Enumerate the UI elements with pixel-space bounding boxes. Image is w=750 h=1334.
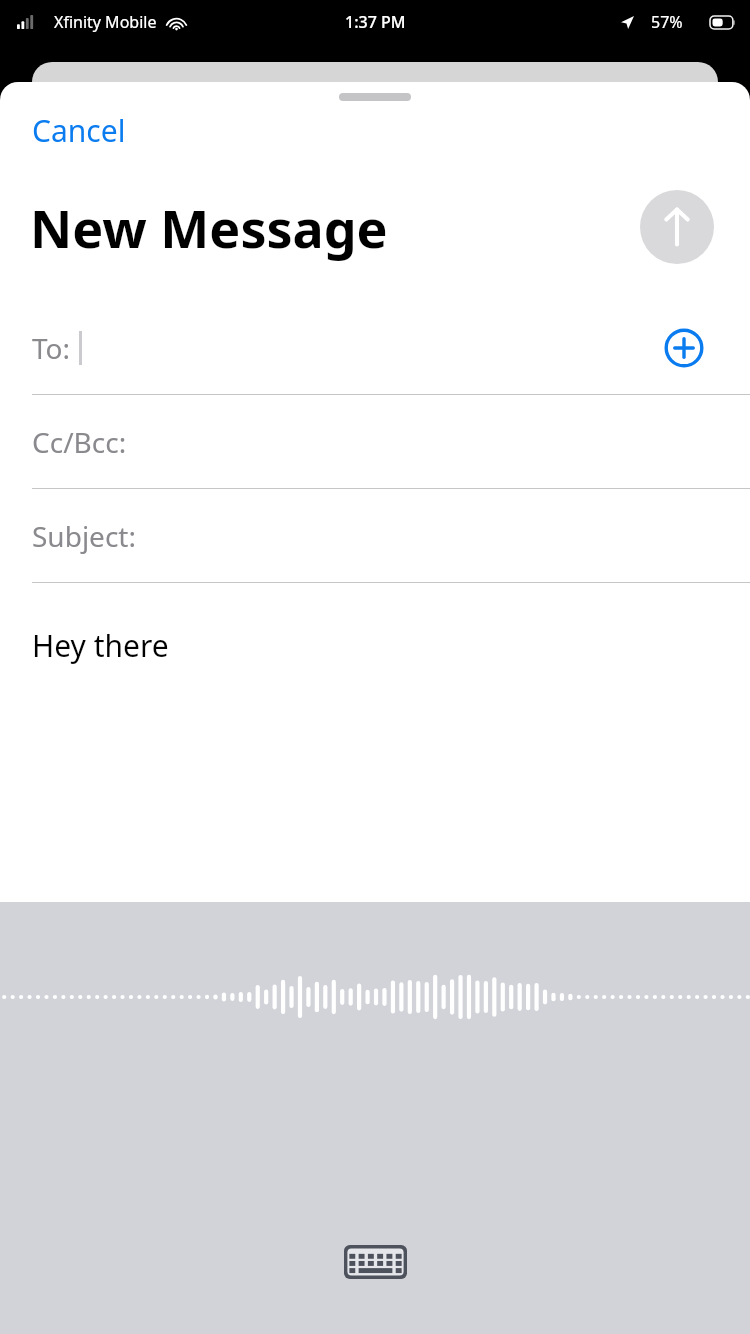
button[interactable]: To: bbox=[0, 301, 750, 395]
staticText: Cancel bbox=[32, 110, 126, 151]
button[interactable]: Send bbox=[640, 190, 714, 264]
staticText: Hey there bbox=[32, 625, 169, 666]
button[interactable]: Hide keyboard bbox=[336, 1237, 414, 1287]
button[interactable]: Cc/Bcc: bbox=[0, 395, 750, 489]
staticText: Xfinity Mobile bbox=[54, 11, 157, 33]
button[interactable]: Hey there bbox=[0, 625, 750, 725]
button[interactable]: Add contact bbox=[662, 326, 706, 370]
staticText: New Message bbox=[30, 192, 388, 263]
staticText: 1:37 PM bbox=[345, 11, 406, 33]
staticText: To: bbox=[32, 329, 71, 367]
staticText: 57% bbox=[651, 11, 683, 33]
staticText: Subject: bbox=[32, 517, 136, 555]
button[interactable]: Cancel bbox=[32, 110, 126, 151]
button[interactable]: Subject: bbox=[0, 489, 750, 583]
staticText: Cc/Bcc: bbox=[32, 423, 127, 461]
